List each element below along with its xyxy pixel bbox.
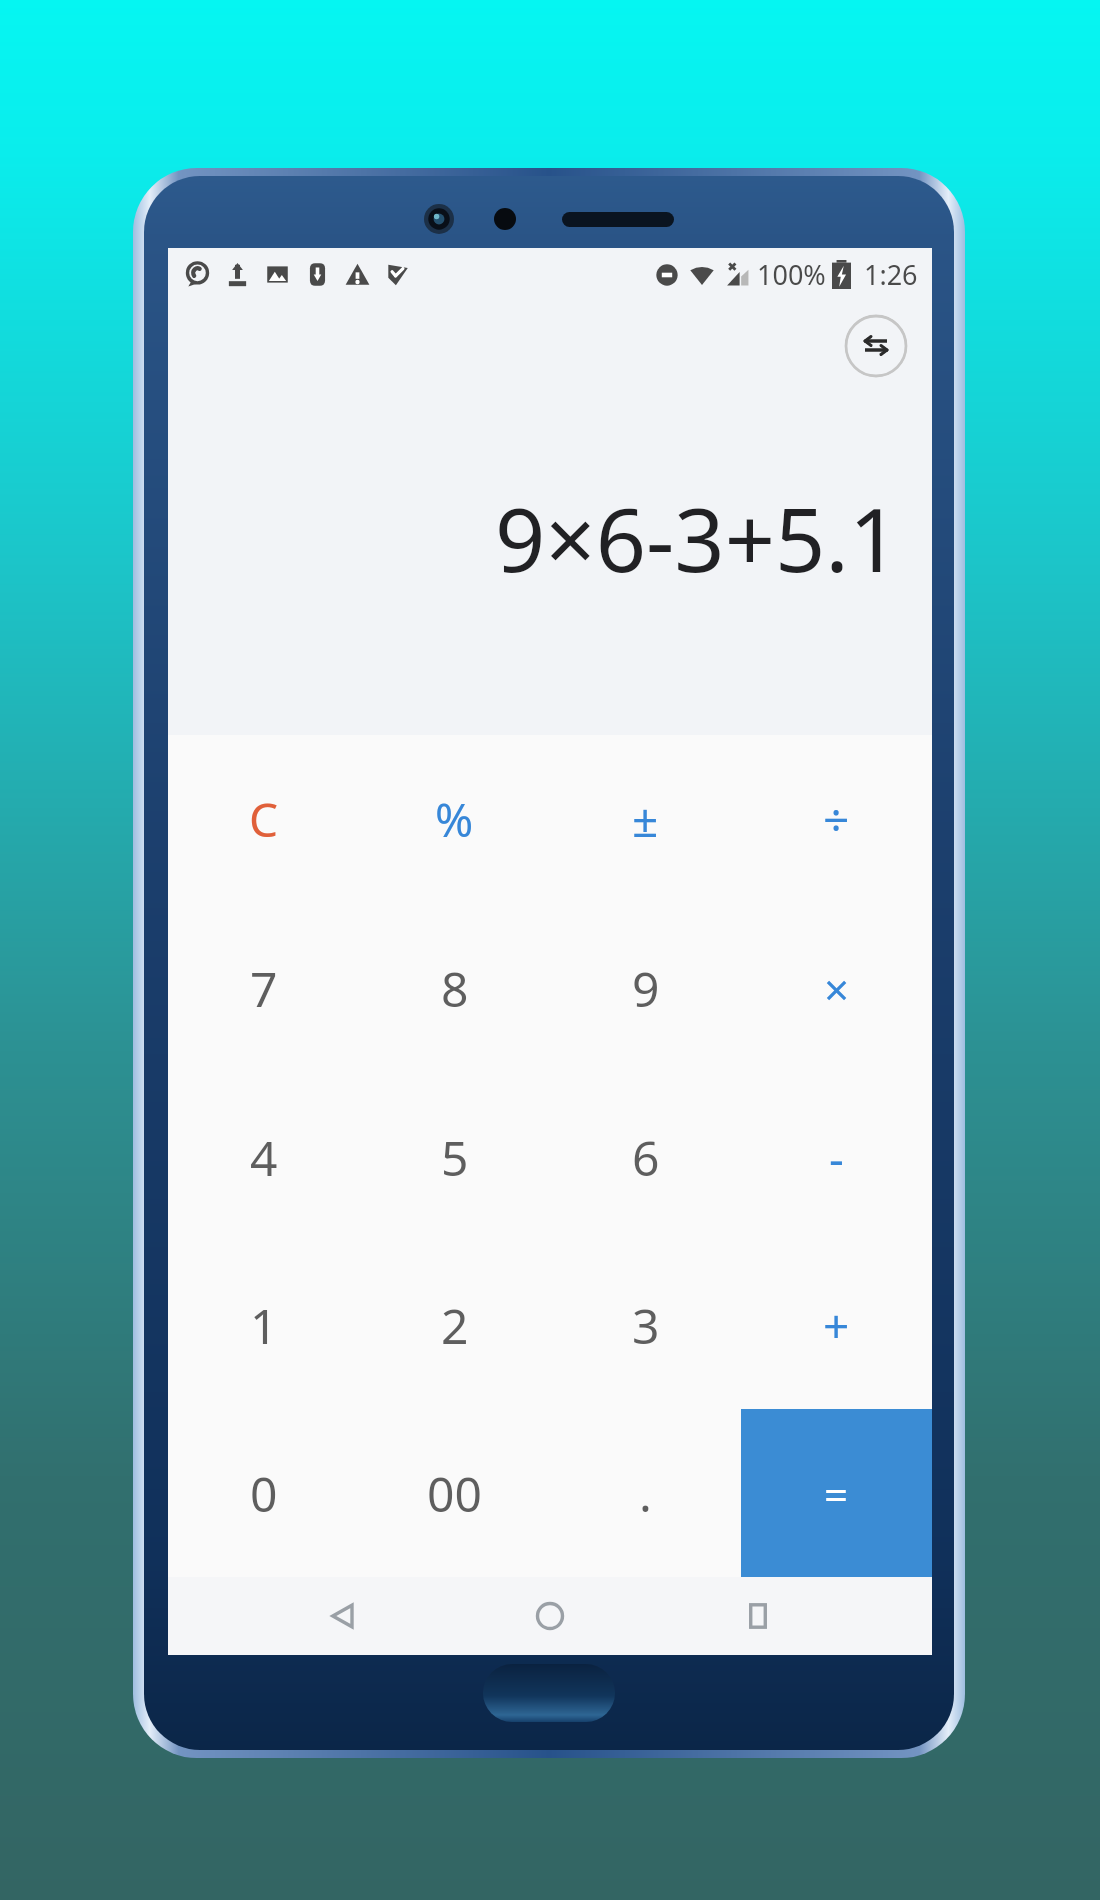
button[interactable]: Back [310,1583,376,1649]
staticText: 1:26 [864,256,918,293]
button[interactable]: C [168,735,359,904]
button[interactable]: 2 [359,1241,550,1409]
staticText: = [824,1465,849,1522]
button[interactable]: . [550,1409,741,1577]
staticText: + [823,1294,850,1357]
button[interactable]: 7 [168,904,359,1073]
staticText: 0 [250,1461,278,1526]
button[interactable]: Home button [483,1664,615,1722]
button[interactable]: Swap units [844,314,908,378]
button[interactable]: = [741,1409,932,1577]
button[interactable]: 8 [359,904,550,1073]
button[interactable]: 00 [359,1409,550,1577]
staticText: - [829,1126,844,1189]
button[interactable]: 1 [168,1241,359,1409]
button[interactable]: Recents [725,1583,791,1649]
button[interactable]: 9 [550,904,741,1073]
staticText: 9 [632,956,660,1021]
button[interactable]: ± [550,735,741,904]
button[interactable]: 5 [359,1073,550,1241]
button[interactable]: % [359,735,550,904]
button[interactable]: 6 [550,1073,741,1241]
staticText: 9×6-3+5.1 [495,478,900,598]
button[interactable]: + [741,1241,932,1409]
staticText: 4 [250,1125,278,1190]
staticText: C [249,788,279,851]
staticText: ± [632,788,659,851]
staticText: 2 [441,1293,469,1358]
staticText: 3 [632,1293,660,1358]
button[interactable]: 0 [168,1409,359,1577]
staticText: 100% [757,256,826,293]
button[interactable]: ÷ [741,735,932,904]
button[interactable]: Home [517,1583,583,1649]
staticText: 5 [441,1125,469,1190]
staticText: 1 [250,1293,278,1358]
staticText: 8 [441,956,469,1021]
button[interactable]: × [741,904,932,1073]
staticText: 7 [250,956,278,1021]
staticText: . [639,1461,652,1526]
button[interactable]: 4 [168,1073,359,1241]
staticText: 6 [632,1125,660,1190]
staticText: 00 [427,1461,482,1526]
staticText: ÷ [823,788,850,851]
button[interactable]: 3 [550,1241,741,1409]
staticText: % [435,788,474,851]
staticText: × [824,959,850,1019]
button[interactable]: - [741,1073,932,1241]
